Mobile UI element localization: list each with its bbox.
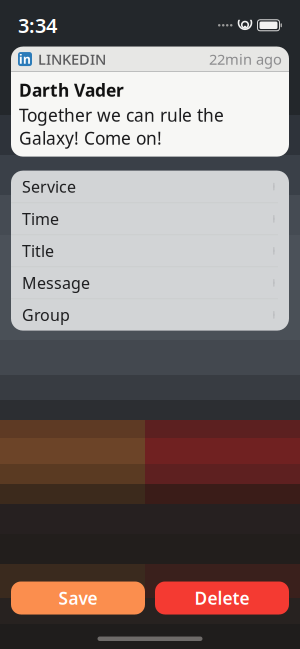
button[interactable]: Message <box>11 267 289 299</box>
staticText: 22min ago <box>209 49 282 69</box>
staticText: Delete <box>194 586 249 609</box>
staticText: Time <box>22 208 59 229</box>
staticText: Title <box>22 240 54 261</box>
button[interactable]: Delete <box>155 581 289 614</box>
staticText: Service <box>22 176 76 197</box>
staticText: Together we can rule the Galaxy! Come on… <box>19 104 224 150</box>
staticText: Group <box>22 304 70 325</box>
staticText: LINKEDIN <box>38 49 106 69</box>
staticText: Save <box>58 586 97 609</box>
staticText: Message <box>22 272 90 293</box>
button[interactable]: Group <box>11 299 289 331</box>
button[interactable]: Save <box>11 581 145 614</box>
staticText: in <box>19 51 31 67</box>
button[interactable]: in <box>11 47 289 157</box>
button[interactable]: Time <box>11 203 289 235</box>
staticText: Darth Vader <box>19 79 124 102</box>
staticText: 3:34 <box>18 12 57 39</box>
button[interactable]: Title <box>11 235 289 267</box>
button[interactable]: Service <box>11 171 289 203</box>
